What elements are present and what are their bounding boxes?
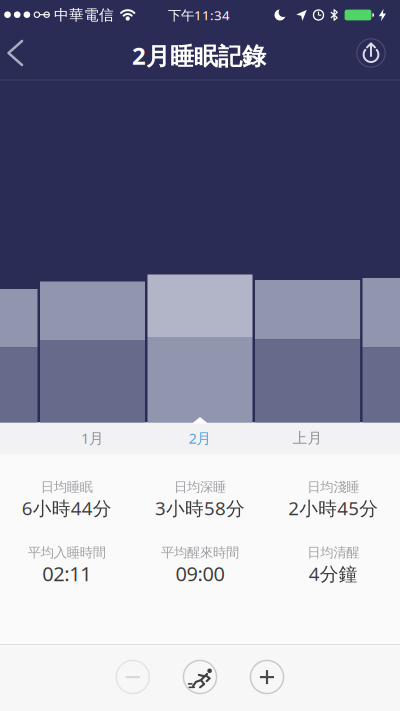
staticText: 下午11:34 (168, 6, 230, 24)
staticText: 4分鐘 (309, 561, 358, 586)
staticText: 2月睡眠記錄 (132, 40, 266, 71)
staticText: 2月 (188, 428, 211, 448)
staticText: 日均淺睡 (307, 479, 359, 495)
staticText: 09:00 (175, 560, 224, 587)
staticText: 1月 (81, 428, 104, 448)
button[interactable]: Share (356, 38, 386, 68)
button[interactable]: 1月 (42, 422, 142, 453)
staticText: 平均入睡時間 (28, 544, 106, 561)
button[interactable]: 2月 (150, 422, 250, 453)
staticText: 3小時58分 (155, 496, 245, 520)
staticText: 平均醒來時間 (161, 544, 239, 561)
staticText: 日均清醒 (307, 544, 359, 561)
staticText: 中華電信 (54, 6, 114, 24)
staticText: 日均睡眠 (41, 479, 93, 495)
staticText: 上月 (292, 429, 322, 447)
button[interactable]: Decrease (115, 660, 150, 694)
staticText: 6小時44分 (22, 496, 112, 520)
button[interactable]: 上月 (257, 422, 357, 453)
staticText: 02:11 (42, 560, 91, 587)
button[interactable]: Back (4, 30, 30, 76)
button[interactable]: Activity (183, 660, 217, 694)
staticText: 日均深睡 (174, 479, 226, 495)
staticText: 2小時45分 (288, 496, 378, 520)
button[interactable]: Increase (250, 660, 284, 694)
